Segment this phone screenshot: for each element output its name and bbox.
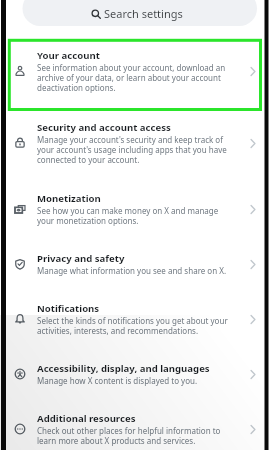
button[interactable]: Additional resources [0,399,270,450]
staticText: Select the kinds of notifications you ge… [37,315,233,336]
staticText: See how you can make money on X and mana… [37,205,233,226]
button[interactable]: Accessibility, display, and languages [0,349,270,399]
button[interactable]: Security and account access [0,107,270,179]
staticText: See information about your account, down… [37,62,233,93]
button[interactable]: Monetization [0,179,270,239]
staticText: Your account [37,49,100,62]
staticText: Accessibility, display, and languages [37,362,210,375]
staticText: Additional resources [37,412,136,425]
button[interactable]: Privacy and safety [0,239,270,289]
button[interactable]: Search settings [19,0,254,26]
staticText: Privacy and safety [37,252,125,265]
staticText: Search settings [104,6,183,21]
button[interactable]: Notifications [0,289,270,349]
staticText: Manage your account's security and keep … [37,134,233,165]
staticText: Check out other places for helpful infor… [37,425,233,446]
staticText: Monetization [37,192,101,205]
staticText: Manage what information you see and shar… [37,265,227,276]
staticText: Notifications [37,302,100,315]
button[interactable]: Your account [0,35,270,107]
staticText: Security and account access [37,121,171,134]
staticText: Manage how X content is displayed to you… [37,375,198,386]
